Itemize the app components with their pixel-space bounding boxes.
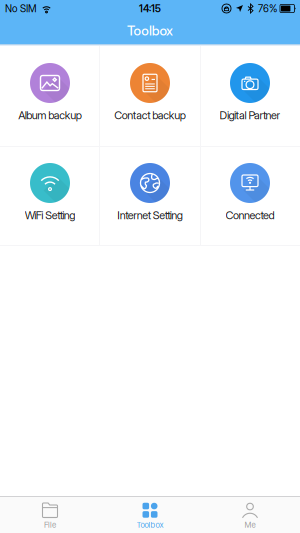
button[interactable]: Toolbox bbox=[100, 497, 200, 533]
button[interactable]: Digital Partner bbox=[200, 46, 300, 146]
staticText: Internet Setting bbox=[117, 208, 183, 222]
staticText: 14:15 bbox=[139, 2, 161, 15]
button[interactable]: Connected bbox=[200, 146, 300, 246]
staticText: Album backup bbox=[18, 108, 82, 122]
staticText: Contact backup bbox=[114, 108, 186, 122]
staticText: Me bbox=[244, 520, 255, 530]
button[interactable]: Me bbox=[200, 497, 300, 533]
button[interactable]: Album backup bbox=[0, 46, 100, 146]
button[interactable]: Contact backup bbox=[100, 46, 200, 146]
button[interactable]: WiFi Setting bbox=[0, 146, 100, 246]
staticText: WiFi Setting bbox=[25, 208, 75, 222]
staticText: Toolbox bbox=[136, 520, 163, 530]
staticText: File bbox=[44, 520, 56, 530]
staticText: No SIM bbox=[5, 2, 37, 15]
staticText: 76% bbox=[258, 2, 277, 15]
button[interactable]: File bbox=[0, 497, 100, 533]
staticText: Toolbox bbox=[127, 22, 173, 39]
staticText: Connected bbox=[225, 208, 274, 222]
staticText: Digital Partner bbox=[219, 108, 280, 122]
button[interactable]: Internet Setting bbox=[100, 146, 200, 246]
